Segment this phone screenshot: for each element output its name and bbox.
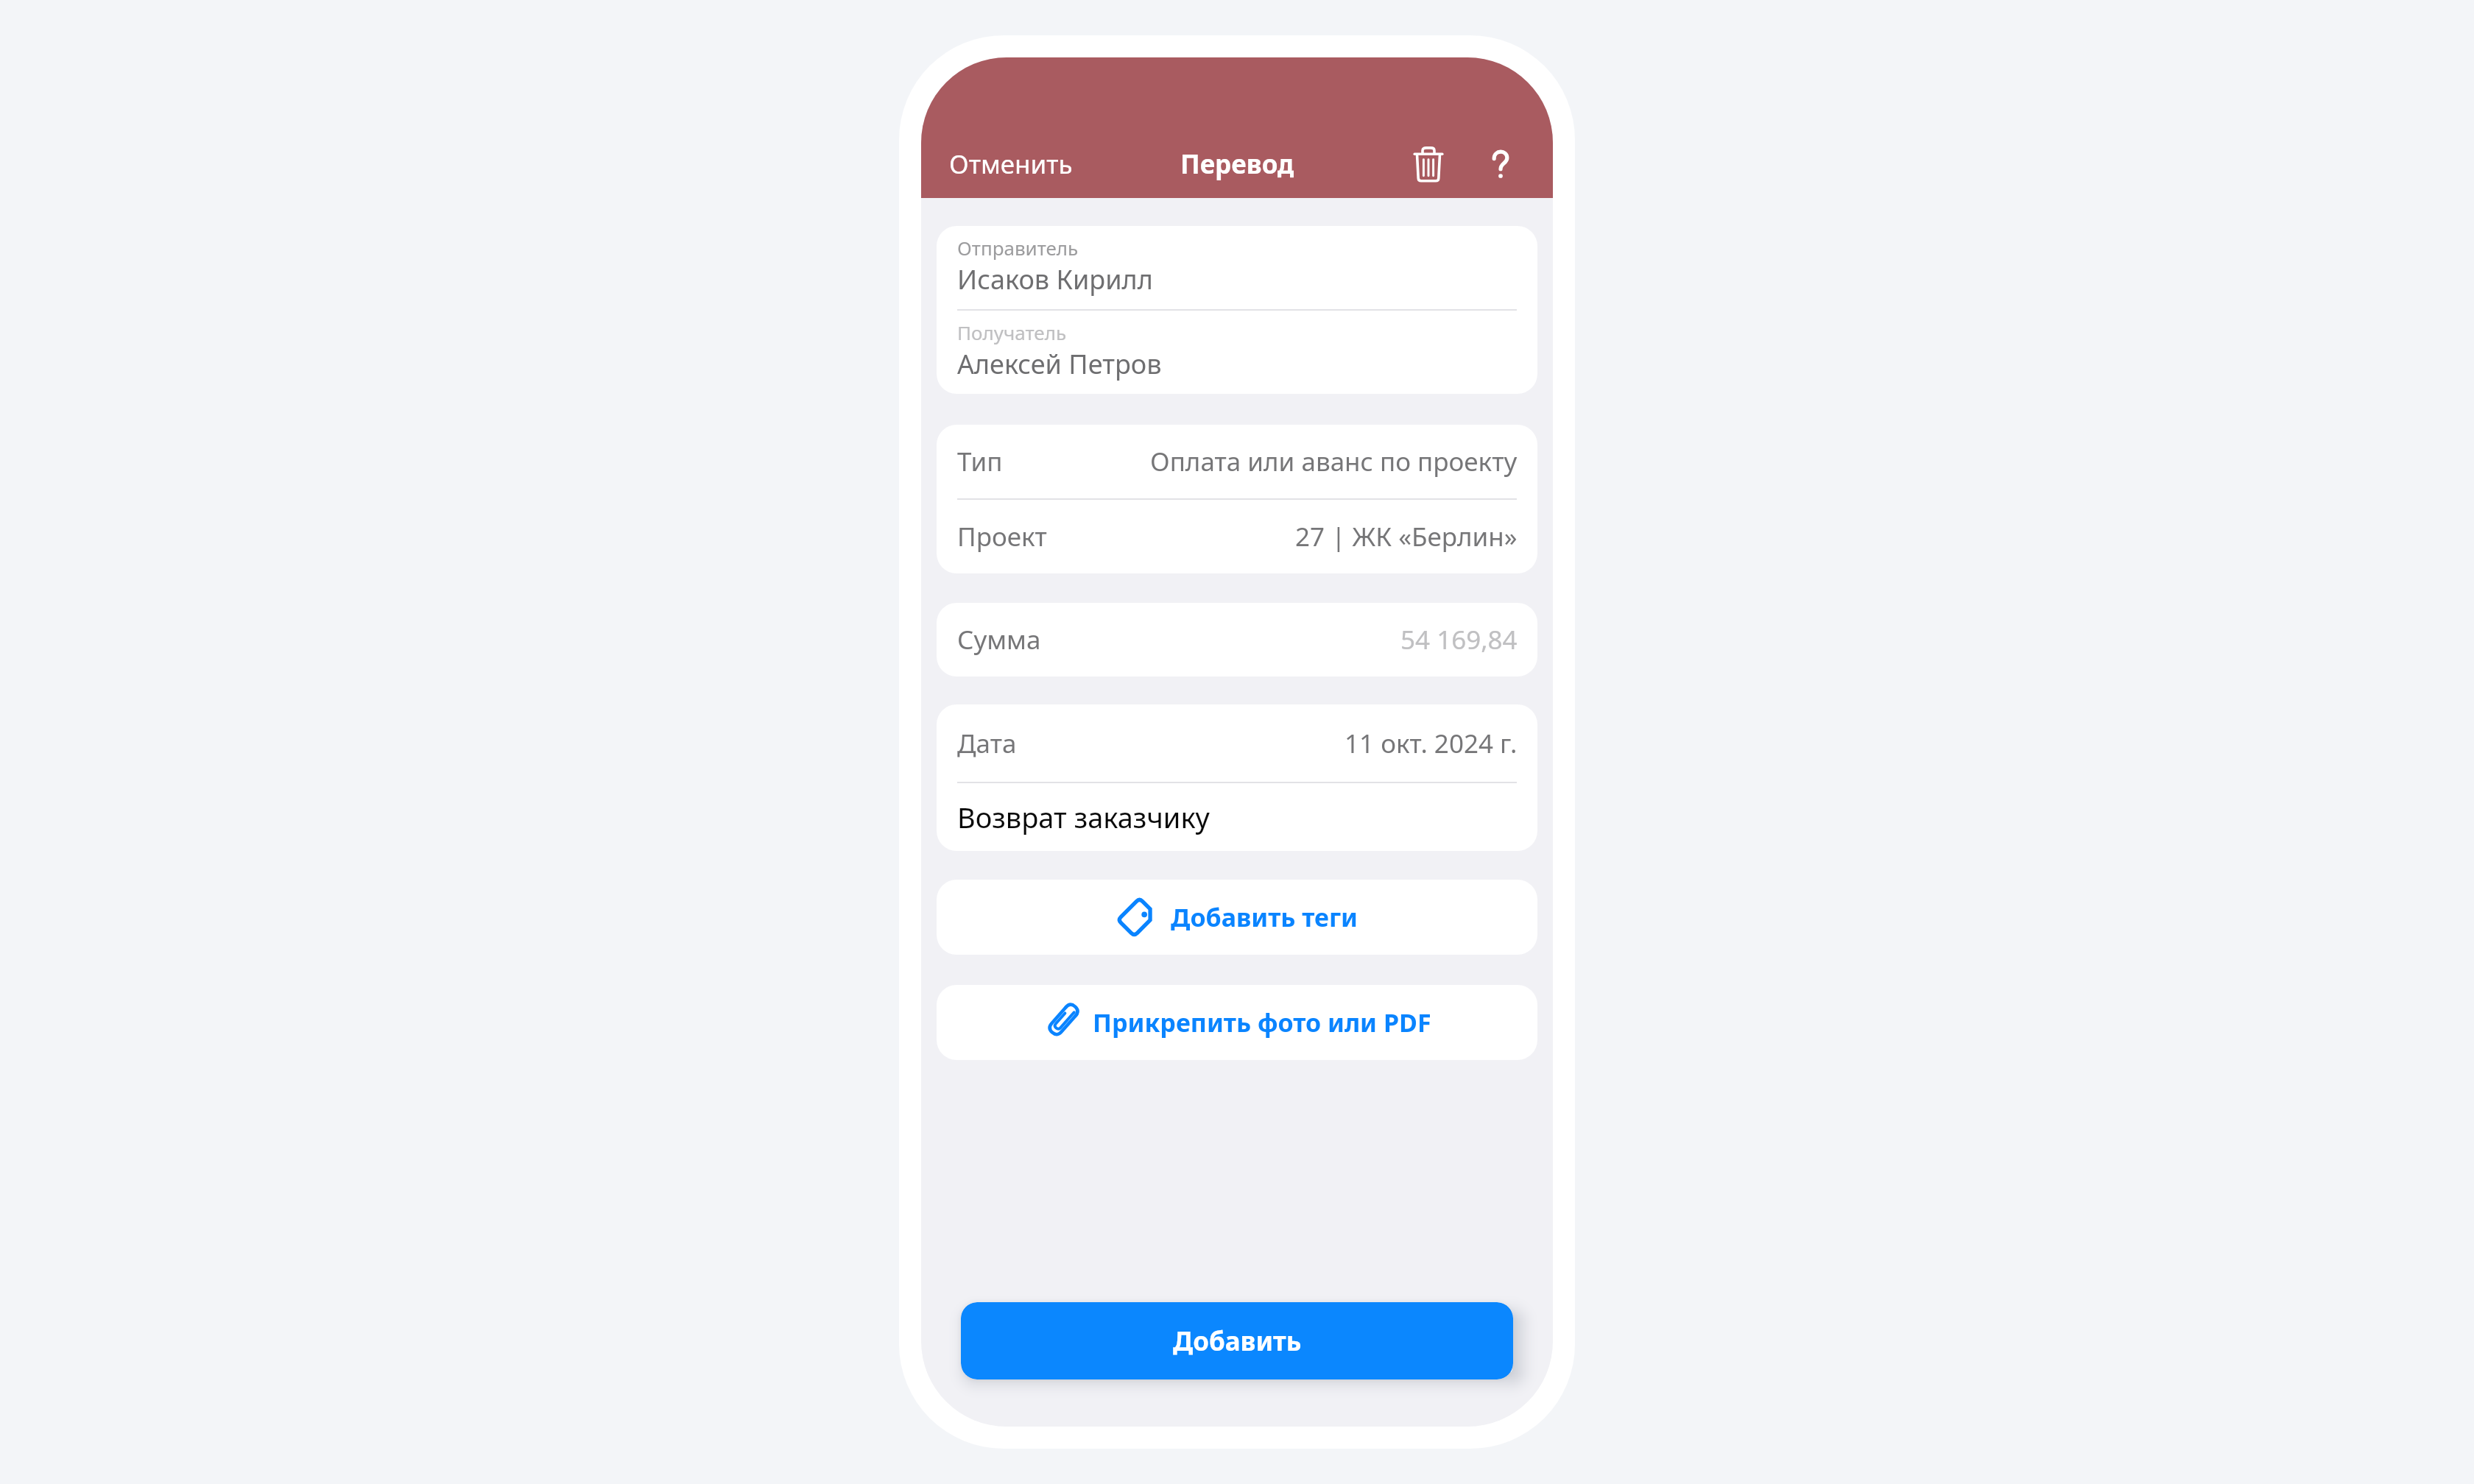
button[interactable]: Добавить bbox=[961, 1302, 1513, 1379]
staticText: Добавить теги bbox=[1171, 900, 1358, 934]
button[interactable]: Отменить bbox=[921, 141, 1085, 188]
staticText: Исаков Кирилл bbox=[957, 261, 1153, 297]
button[interactable]: Сумма bbox=[937, 603, 1537, 676]
button[interactable]: Дата bbox=[937, 704, 1537, 782]
staticText: Отправитель bbox=[957, 235, 1079, 261]
staticText: Тип bbox=[957, 444, 1003, 479]
staticText: 54 169,84 bbox=[1400, 622, 1518, 657]
staticText: Проект bbox=[957, 519, 1047, 554]
staticText: Прикрепить фото или PDF bbox=[1093, 1006, 1431, 1039]
staticText: 11 окт. 2024 г. bbox=[1345, 726, 1518, 761]
staticText: Сумма bbox=[957, 622, 1041, 657]
button[interactable]: Возврат заказчику bbox=[937, 783, 1537, 851]
staticText: Добавить bbox=[1173, 1324, 1302, 1359]
staticText: Получатель bbox=[957, 319, 1067, 345]
staticText: Перевод bbox=[1180, 146, 1294, 182]
button[interactable]: Help bbox=[1479, 142, 1523, 186]
button[interactable]: Отправитель bbox=[937, 226, 1537, 309]
staticText: Дата bbox=[957, 726, 1017, 761]
button[interactable]: Проект bbox=[937, 500, 1537, 573]
button[interactable]: Тип bbox=[937, 425, 1537, 498]
staticText: Отменить bbox=[949, 146, 1073, 182]
staticText: Возврат заказчику bbox=[957, 798, 1210, 836]
button[interactable]: Получатель bbox=[937, 311, 1537, 394]
staticText: Алексей Петров bbox=[957, 346, 1162, 382]
button[interactable]: Delete bbox=[1400, 136, 1456, 192]
button[interactable]: Прикрепить фото или PDF bbox=[937, 985, 1537, 1060]
staticText: 27 | ЖК «Берлин» bbox=[1295, 519, 1518, 554]
staticText: Оплата или аванс по проекту bbox=[1150, 444, 1518, 479]
button[interactable]: Добавить теги bbox=[937, 880, 1537, 955]
